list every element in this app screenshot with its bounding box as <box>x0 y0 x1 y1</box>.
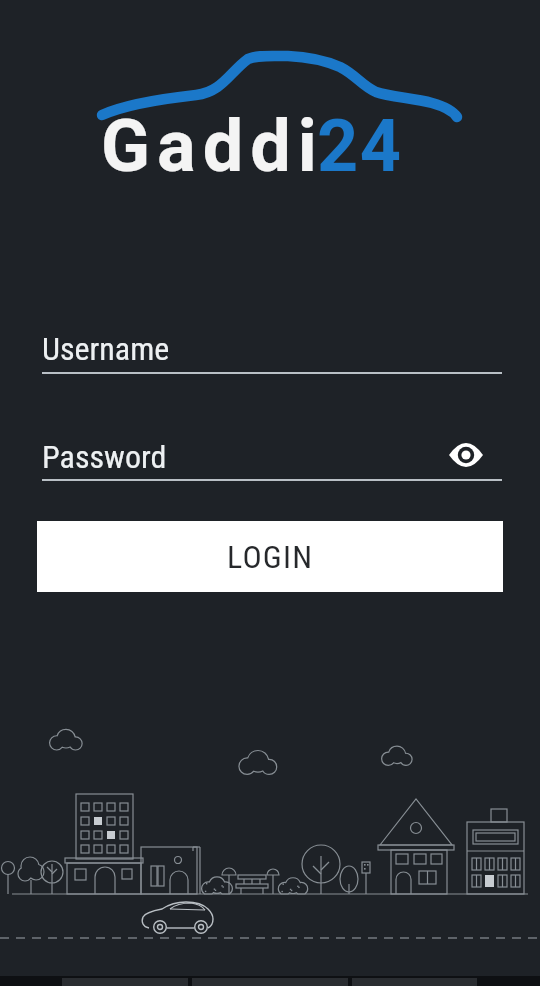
button[interactable]: Username <box>42 322 502 374</box>
button[interactable]: Password <box>42 429 502 481</box>
staticText: Gaddi <box>101 104 324 188</box>
button[interactable]: LOGIN <box>37 521 503 592</box>
staticText: LOGIN <box>227 538 314 576</box>
staticText: Username <box>42 330 170 368</box>
staticText: Password <box>42 438 167 476</box>
button[interactable] <box>444 434 488 478</box>
staticText: 24 <box>317 104 403 188</box>
